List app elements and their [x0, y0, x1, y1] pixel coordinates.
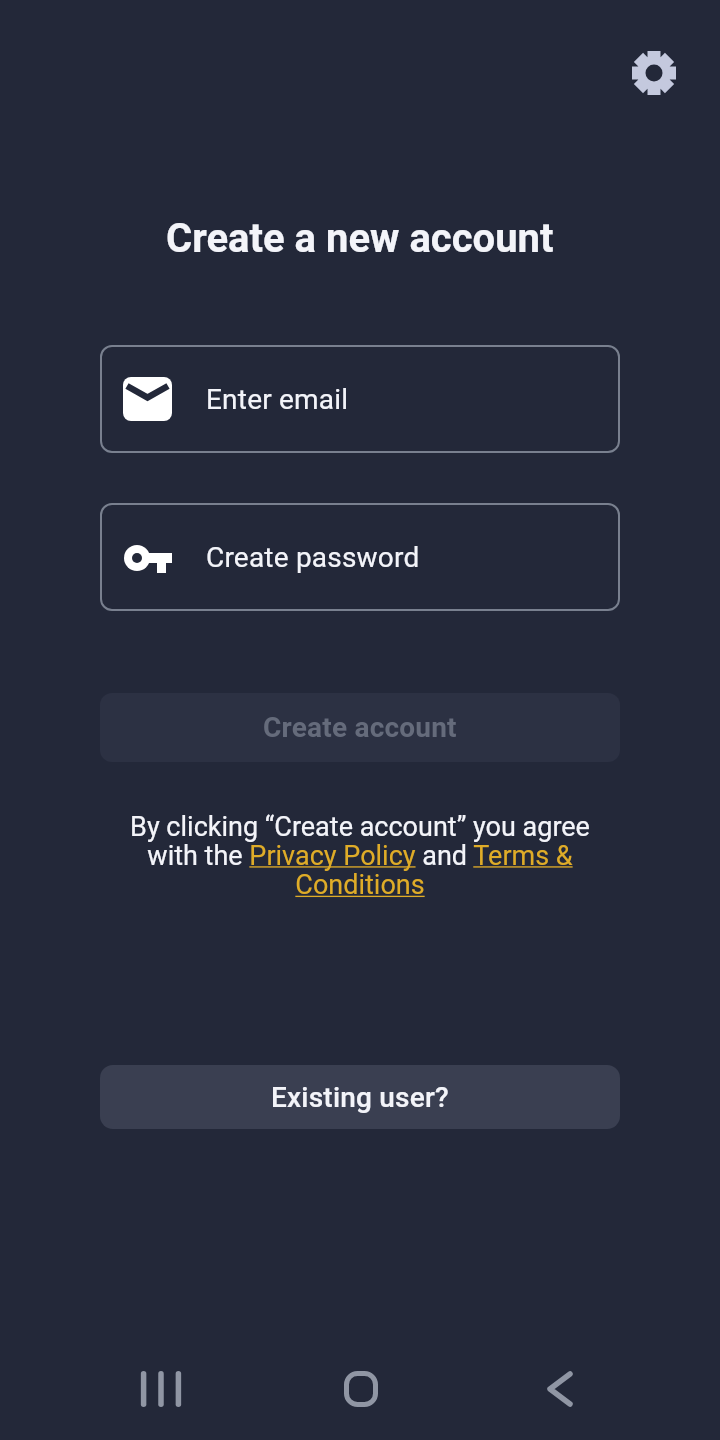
button[interactable]: By clicking “Create account” you agree w…: [0, 811, 720, 901]
staticText: Existing user?: [271, 1081, 449, 1114]
staticText: Enter email: [206, 383, 349, 416]
staticText: Create password: [206, 541, 420, 574]
staticText: By clicking “Create account” you agree w…: [130, 811, 590, 901]
staticText: Create account: [263, 711, 457, 744]
button[interactable]: [125, 1353, 197, 1425]
staticText: Create a new account: [166, 215, 554, 262]
button[interactable]: Enter email: [100, 345, 620, 453]
button[interactable]: [325, 1353, 397, 1425]
button[interactable]: [524, 1353, 596, 1425]
button[interactable]: [620, 39, 688, 107]
button[interactable]: Create password: [100, 503, 620, 611]
button[interactable]: Create account: [100, 693, 620, 762]
button[interactable]: Existing user?: [100, 1065, 620, 1129]
